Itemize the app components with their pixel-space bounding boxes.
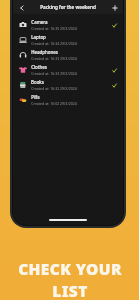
button[interactable]: Clothes <box>13 62 123 77</box>
button[interactable]: Laptop <box>13 32 123 47</box>
button[interactable]: Back <box>16 2 27 13</box>
button[interactable]: Add item <box>109 2 120 13</box>
staticText: Created at: 16:02 29/3/2024 <box>31 101 77 106</box>
staticText: Pills <box>31 94 40 100</box>
button[interactable]: Camera <box>13 17 123 32</box>
button[interactable]: Pills <box>13 92 123 107</box>
staticText: Camera <box>31 19 48 25</box>
staticText: Books <box>31 79 44 85</box>
staticText: Packing for the weekend <box>40 4 96 10</box>
button[interactable]: Books <box>13 77 123 92</box>
button[interactable]: Headphones <box>13 47 123 62</box>
staticText: Created at: 16:34 29/3/2024 <box>31 41 77 46</box>
staticText: Created at: 16:35 29/3/2024 <box>31 26 77 31</box>
staticText: CHECK YOUR <box>18 258 122 279</box>
staticText: Headphones <box>31 49 58 55</box>
staticText: Created at: 16:33 29/3/2024 <box>31 71 77 76</box>
staticText: Clothes <box>31 64 47 70</box>
staticText: Created at: 16:33 29/3/2024 <box>31 56 77 61</box>
staticText: Created at: 16:32 29/3/2024 <box>31 86 77 91</box>
staticText: Laptop <box>31 34 46 40</box>
staticText: LIST <box>52 280 88 300</box>
